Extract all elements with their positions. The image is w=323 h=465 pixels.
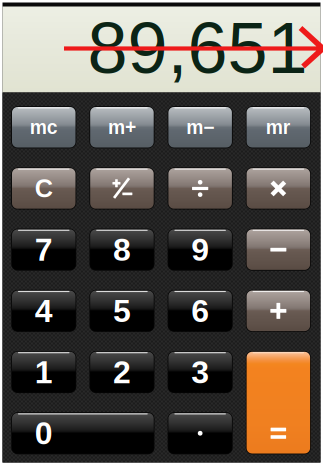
staticText: 2 [113,354,131,390]
button[interactable]: 4 [12,291,75,331]
staticText: 7 [35,232,53,268]
staticText: 3 [191,354,209,390]
button[interactable]: 5 [90,291,154,331]
button[interactable]: 2 [90,352,154,392]
button[interactable]: Divide [168,168,232,209]
button[interactable]: Plus [247,291,310,331]
button[interactable]: Multiply [247,168,310,209]
staticText: mc [30,116,58,138]
button[interactable]: Minus [247,229,310,270]
staticText: 1 [35,354,53,390]
staticText: 9 [191,232,209,268]
staticText: 8 [113,232,131,268]
staticText: mr [266,116,291,138]
button[interactable]: 3 [168,352,232,392]
button[interactable]: 0 [12,413,154,453]
staticText: m+ [108,116,136,138]
staticText: C [35,174,53,203]
staticText: m− [186,116,214,138]
button[interactable]: Plus or minus [90,168,154,209]
staticText: 4 [35,293,53,329]
button[interactable]: Decimal point [168,413,232,453]
staticText: 6 [191,293,209,329]
button[interactable]: m+ [90,107,154,147]
button[interactable]: 6 [168,291,232,331]
button[interactable]: 1 [12,352,75,392]
button[interactable]: mc [12,107,75,147]
button[interactable] [247,352,310,453]
staticText: 5 [113,293,131,329]
button[interactable]: m− [168,107,232,147]
button[interactable]: 9 [168,229,232,270]
button[interactable]: mr [247,107,310,147]
button[interactable]: 7 [12,229,75,270]
staticText: 89,651 [87,8,307,88]
staticText: 0 [35,415,53,451]
button[interactable]: 8 [90,229,154,270]
button[interactable]: C [12,168,75,209]
